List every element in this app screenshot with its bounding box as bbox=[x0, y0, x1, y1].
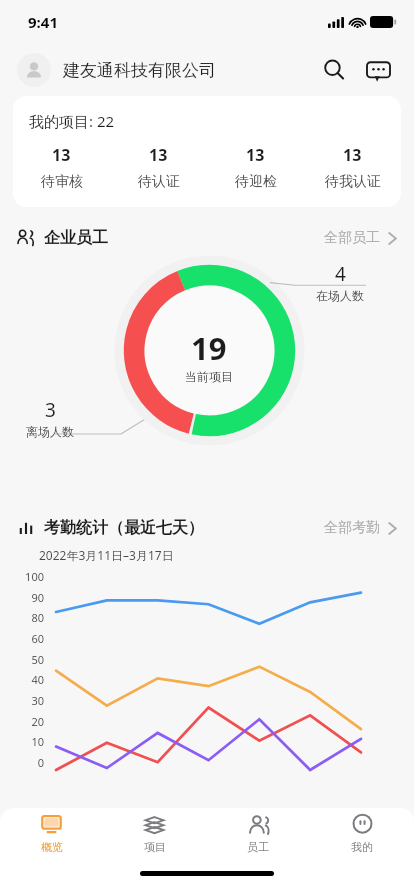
staticText: 13 bbox=[149, 144, 168, 166]
button[interactable]: 13 bbox=[13, 144, 110, 191]
button[interactable]: Search bbox=[316, 52, 352, 88]
button[interactable]: 13 bbox=[207, 144, 304, 191]
staticText: 3 bbox=[45, 397, 56, 423]
staticText: 0 bbox=[18, 755, 44, 770]
staticText: 100 bbox=[18, 569, 44, 584]
staticText: 13 bbox=[343, 144, 362, 166]
button[interactable]: 全部考勤 bbox=[324, 519, 397, 537]
staticText: 4 bbox=[335, 261, 346, 287]
staticText: 我的 bbox=[351, 840, 373, 854]
staticText: 待迎检 bbox=[235, 173, 277, 191]
staticText: 当前项目 bbox=[185, 369, 233, 384]
staticText: 全部员工 bbox=[324, 229, 380, 247]
staticText: 全部考勤 bbox=[324, 519, 380, 537]
staticText: 离场人数 bbox=[26, 424, 74, 439]
staticText: 2022年3月11日–3月17日 bbox=[39, 547, 174, 563]
staticText: 90 bbox=[18, 590, 44, 605]
staticText: 50 bbox=[18, 652, 44, 667]
staticText: 19 bbox=[191, 327, 227, 369]
staticText: 员工 bbox=[247, 840, 269, 854]
staticText: 10 bbox=[18, 734, 44, 749]
button[interactable]: Messages bbox=[360, 52, 396, 88]
staticText: 建友通科技有限公司 bbox=[63, 60, 216, 81]
staticText: 项目 bbox=[144, 840, 166, 854]
button[interactable]: 我的 bbox=[310, 808, 414, 862]
button[interactable]: 13 bbox=[304, 144, 401, 191]
button[interactable]: 项目 bbox=[103, 808, 206, 862]
button[interactable]: 13 bbox=[110, 144, 207, 191]
staticText: 待审核 bbox=[41, 173, 83, 191]
staticText: 40 bbox=[18, 672, 44, 687]
button[interactable]: 我的项目: 22 bbox=[13, 96, 401, 207]
staticText: 我的项目: 22 bbox=[29, 111, 115, 131]
staticText: 80 bbox=[18, 610, 44, 625]
button[interactable]: 全部员工 bbox=[324, 229, 397, 247]
button[interactable]: Profile bbox=[17, 53, 51, 87]
staticText: 待我认证 bbox=[325, 173, 381, 191]
staticText: 在场人数 bbox=[316, 288, 364, 303]
staticText: 13 bbox=[52, 144, 71, 166]
staticText: 20 bbox=[18, 714, 44, 729]
button[interactable]: 概览 bbox=[0, 808, 103, 862]
button[interactable]: 员工 bbox=[206, 808, 310, 862]
staticText: 待认证 bbox=[138, 173, 180, 191]
staticText: 60 bbox=[18, 631, 44, 646]
staticText: 13 bbox=[246, 144, 265, 166]
staticText: 企业员工 bbox=[44, 228, 108, 248]
staticText: 30 bbox=[18, 693, 44, 708]
staticText: 9:41 bbox=[28, 12, 58, 32]
staticText: 概览 bbox=[41, 840, 63, 854]
staticText: 考勤统计（最近七天） bbox=[44, 518, 204, 538]
